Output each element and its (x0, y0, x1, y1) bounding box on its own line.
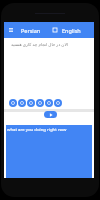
button[interactable]: Translate (54, 99, 62, 107)
button[interactable]: English (61, 22, 94, 38)
button[interactable]: Speak (36, 99, 44, 107)
button[interactable]: what are you doing right now (6, 125, 92, 178)
button[interactable]: Delete (45, 99, 53, 107)
button[interactable]: Menu (5, 22, 16, 38)
button[interactable]: Swap languages (49, 22, 61, 38)
button[interactable]: Favourite (27, 99, 35, 107)
staticText: Persian (21, 27, 41, 34)
button[interactable]: Copy (9, 99, 17, 107)
button[interactable]: Share (18, 99, 26, 107)
staticText: English (62, 27, 81, 34)
button[interactable]: Persian (16, 22, 45, 38)
button[interactable]: Play (44, 111, 57, 118)
staticText: الان در حال انجام چه کاری هستید (11, 42, 68, 48)
staticText: what are you doing right now (7, 126, 67, 132)
